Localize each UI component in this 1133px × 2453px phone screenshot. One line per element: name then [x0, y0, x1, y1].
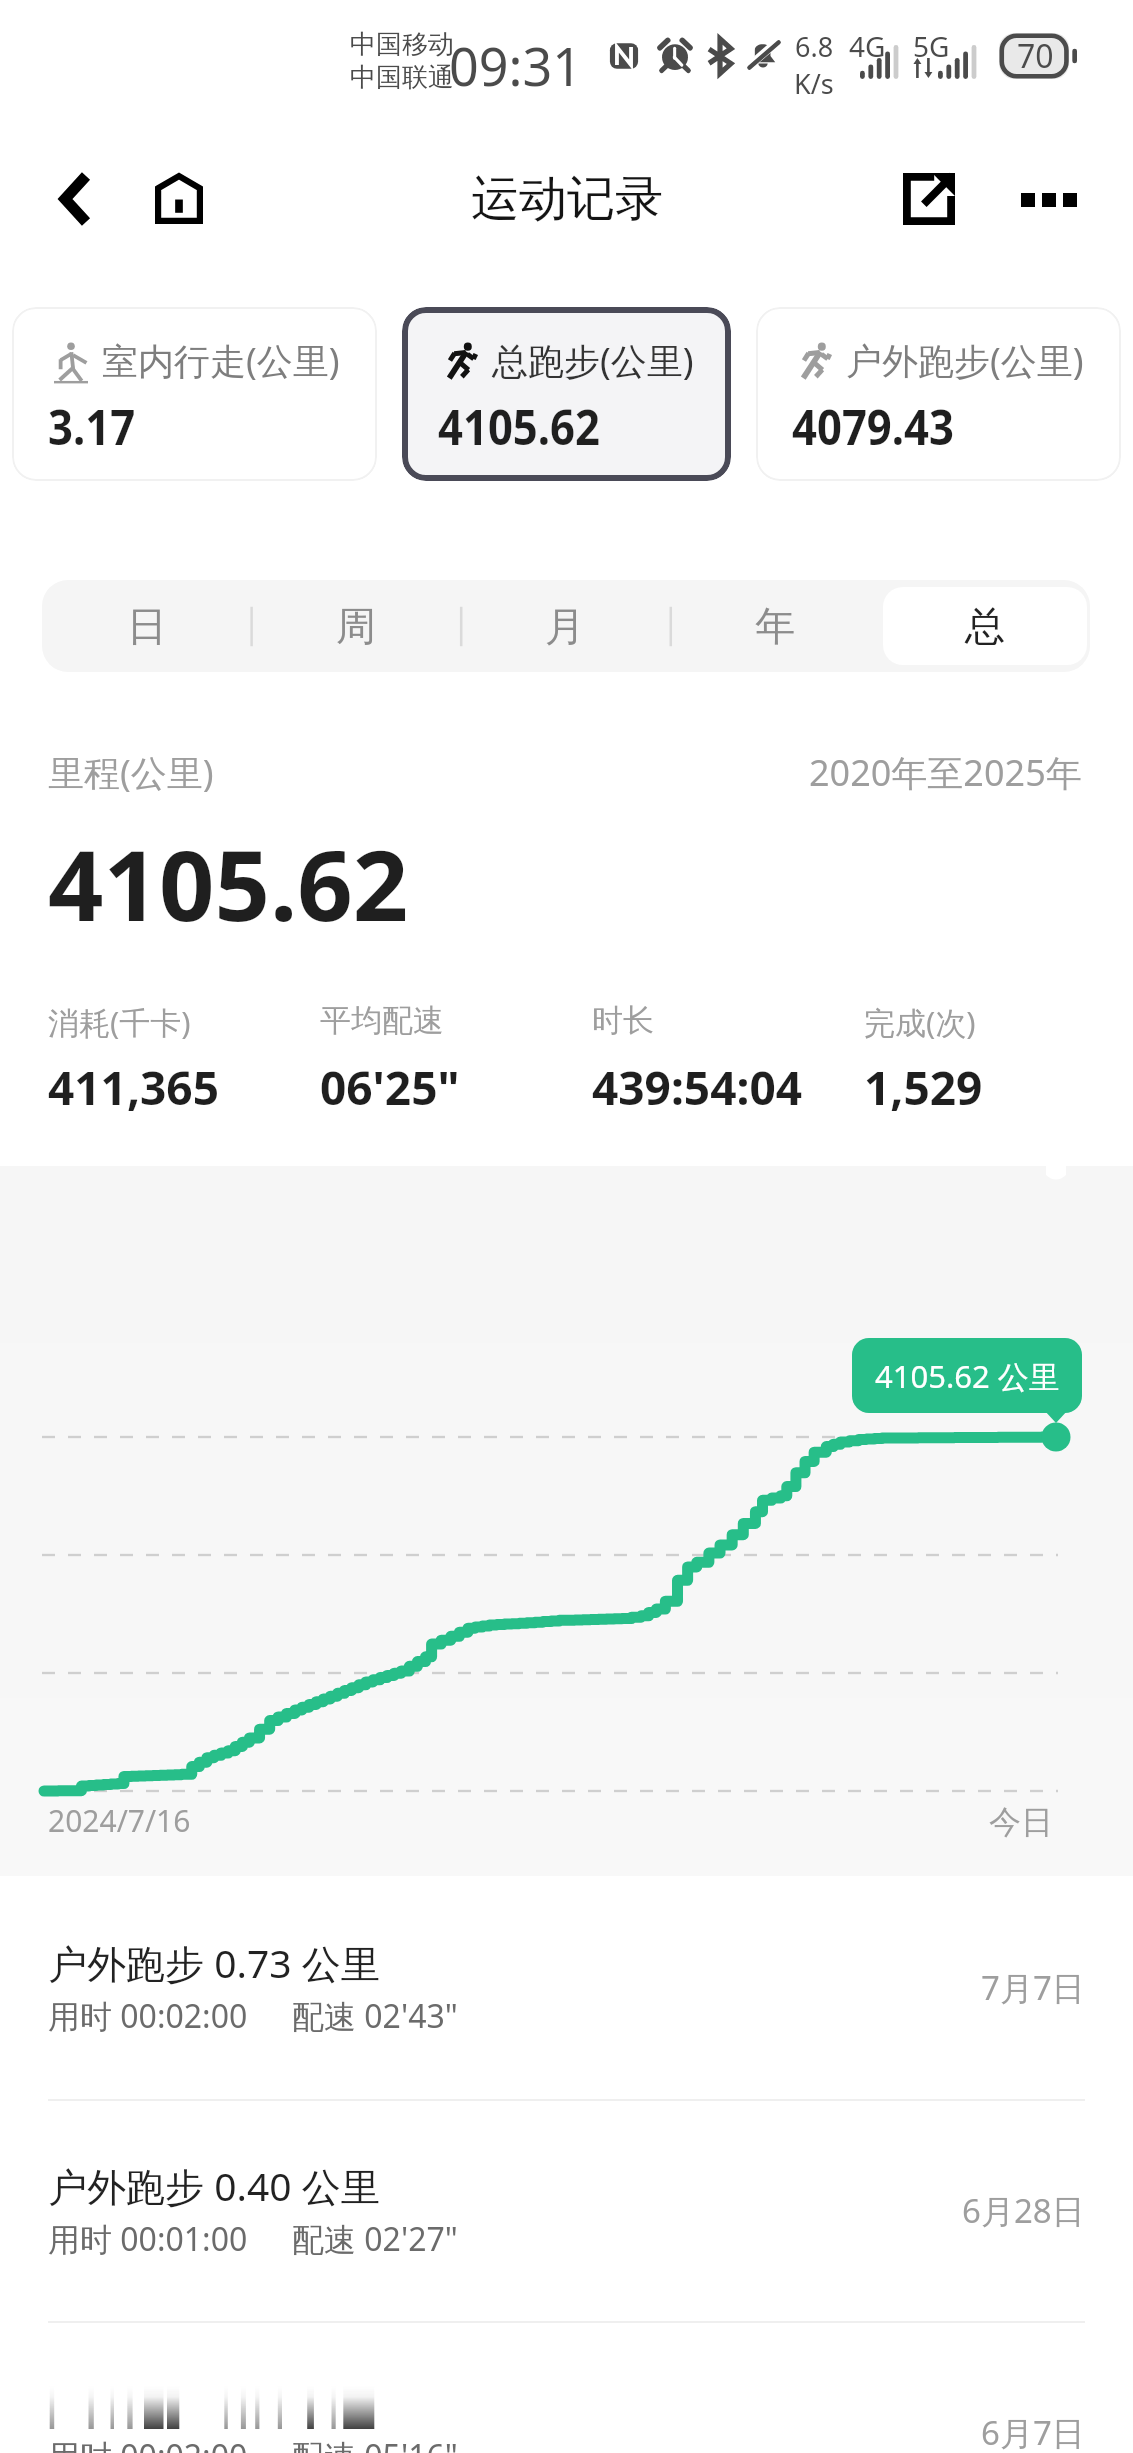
staticText: 户外跑步 0.73 公里 — [48, 1936, 380, 1989]
button[interactable]: 日 — [45, 587, 248, 665]
staticText: 4105.62 — [438, 393, 600, 460]
staticText: 4105.62 公里 — [875, 1355, 1060, 1397]
staticText: 4105.62 — [48, 817, 409, 949]
staticText: 户外跑步 0.40 公里 — [48, 2159, 380, 2212]
staticText: 2024/7/16 — [48, 1800, 191, 1841]
staticText: 1,529 — [864, 1056, 983, 1119]
staticText: 户外跑步(公里) — [846, 336, 1084, 385]
staticText: 消耗(千卡) — [48, 1001, 191, 1043]
staticText: 中国移动 — [350, 28, 454, 61]
staticText: 运动记录 — [471, 169, 663, 229]
button[interactable]: 月 — [463, 587, 667, 665]
button[interactable]: 室内行走(公里) — [12, 307, 377, 481]
staticText: 4079.43 — [792, 393, 954, 460]
staticText: 完成(次) — [864, 1001, 976, 1043]
staticText: 4G — [849, 27, 886, 65]
staticText: 用时 00:02:00 — [48, 2434, 248, 2453]
staticText: 时长 — [592, 1001, 654, 1040]
button[interactable]: 周 — [254, 587, 457, 665]
staticText: 3.17 — [48, 393, 135, 460]
staticText: 中国联通 — [350, 61, 454, 94]
staticText: 09:31 — [449, 30, 582, 101]
staticText: 年 — [755, 601, 795, 651]
staticText: 6月7日 — [981, 2410, 1085, 2453]
staticText: 2020年至2025年 — [809, 748, 1082, 797]
staticText: 周 — [336, 601, 376, 651]
staticText: 5G — [913, 27, 950, 65]
button[interactable]: 用时 00:02:00 — [0, 2321, 1133, 2453]
staticText: 日 — [127, 601, 167, 651]
button[interactable]: 户外跑步(公里) — [756, 307, 1121, 481]
staticText: 用时 00:02:00 — [48, 1994, 248, 2038]
staticText: 配速 02'27" — [292, 2217, 458, 2261]
button[interactable]: 总 — [883, 587, 1087, 665]
button[interactable]: Share — [894, 164, 964, 234]
staticText: 用时 00:01:00 — [48, 2217, 248, 2261]
staticText: 今日 — [989, 1802, 1053, 1842]
button[interactable]: 户外跑步 0.73 公里 — [0, 1876, 1133, 2098]
staticText: 411,365 — [48, 1056, 219, 1119]
staticText: 06'25" — [320, 1056, 460, 1119]
staticText: 439:54:04 — [592, 1056, 803, 1119]
staticText: 里程(公里) — [48, 748, 214, 797]
button[interactable]: More options — [1009, 160, 1089, 240]
button[interactable]: Back — [40, 163, 111, 234]
staticText: 70 — [1017, 34, 1054, 78]
staticText: 总跑步(公里) — [492, 336, 694, 385]
button[interactable]: Home — [144, 163, 214, 233]
staticText: 6月28日 — [962, 2188, 1085, 2233]
staticText: K/s — [794, 65, 834, 102]
button[interactable]: 年 — [673, 587, 877, 665]
staticText: 室内行走(公里) — [102, 336, 340, 385]
button[interactable]: 户外跑步 0.40 公里 — [0, 2099, 1133, 2321]
staticText: 6.8 — [795, 28, 834, 65]
staticText: 平均配速 — [320, 1001, 444, 1040]
button[interactable]: 总跑步(公里) — [402, 307, 731, 481]
staticText: 配速 02'43" — [292, 1994, 458, 2038]
staticText: 7月7日 — [981, 1965, 1085, 2010]
staticText: 总 — [965, 601, 1005, 651]
staticText: 配速 05'16" — [292, 2434, 458, 2453]
staticText: 月 — [545, 601, 585, 651]
